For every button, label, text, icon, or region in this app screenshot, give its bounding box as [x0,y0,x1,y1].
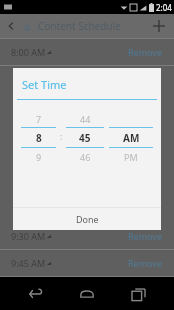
staticText: 9:45 AM [11,257,46,269]
staticText: PM [124,151,138,163]
staticText: 9:30 AM [11,230,46,242]
staticText: Remove [128,230,163,242]
staticText: Done [76,213,99,225]
button[interactable]: 9:30 AM [0,223,174,250]
button[interactable]: 7 [21,110,56,165]
button[interactable]: Home [72,279,102,309]
button[interactable]: 9:45 AM [0,250,174,277]
button[interactable]: 8:00 AM [0,39,174,66]
staticText: Remove [128,46,163,58]
staticText: Set Time [22,77,67,92]
staticText: Content Schedule [38,19,121,33]
staticText: 45 [79,131,91,145]
button[interactable]: Back [21,279,51,309]
button[interactable]: AM [109,110,153,165]
staticText: 46 [80,151,91,163]
staticText: AM [123,131,140,145]
staticText: 9 [36,151,42,163]
button[interactable]: 44 [66,110,104,165]
staticText: 8 [36,131,42,145]
staticText: 7 [36,113,42,125]
staticText: 44 [80,113,91,125]
button[interactable]: Back [4,19,18,33]
button[interactable]: Add [148,15,170,37]
staticText: 8:00 AM [11,46,46,58]
staticText: : [60,130,63,142]
button[interactable]: Recents [123,279,153,309]
button[interactable]: Done [13,208,161,230]
staticText: 2:04 [156,2,172,13]
staticText: Remove [128,257,163,269]
